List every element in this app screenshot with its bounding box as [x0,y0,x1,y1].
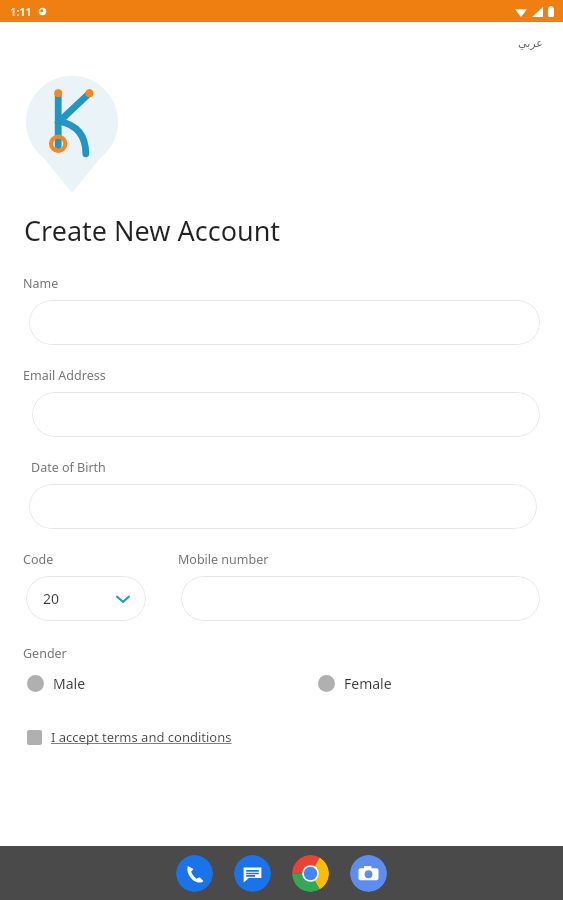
staticText: Female [344,674,392,693]
button[interactable] [32,392,540,437]
button[interactable] [181,576,540,621]
button[interactable]: Male [23,670,90,697]
button[interactable]: Messages [234,855,271,892]
other: App logo [22,72,122,194]
staticText: عربي [518,37,543,50]
staticText: Male [53,674,86,693]
button[interactable] [29,484,537,529]
button[interactable]: Camera [350,855,387,892]
button[interactable]: Phone [176,855,213,892]
staticText: I accept terms and conditions [51,728,232,746]
staticText: 1:11 [10,4,32,19]
button[interactable] [29,300,540,345]
button[interactable]: عربي [512,33,549,54]
staticText: Date of Birth [31,459,106,476]
staticText: Email Address [23,367,106,384]
staticText: Mobile number [178,551,269,568]
staticText: Name [23,275,59,292]
staticText: Code [23,551,54,568]
button[interactable]: I accept terms and conditions [23,725,236,749]
staticText: 20 [43,589,60,608]
staticText: Create New Account [24,212,281,249]
staticText: Gender [23,645,67,662]
button[interactable]: Chrome [292,855,329,892]
other: Expand country code [116,592,130,606]
button[interactable]: 20 [26,576,146,621]
button[interactable]: Female [314,670,396,697]
